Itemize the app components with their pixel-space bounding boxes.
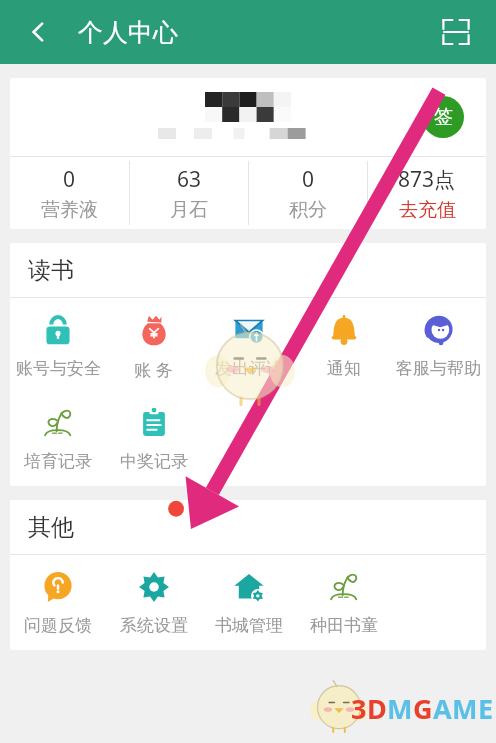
staticText: 0 [302,165,315,194]
staticText: 月石 [170,198,208,222]
staticText: 3 [351,690,367,727]
button[interactable]: 书城管理 [201,565,296,646]
staticText: M [452,690,478,727]
button[interactable]: 63 [130,157,248,229]
button[interactable]: 签 [422,96,464,138]
staticText: 账 务 [134,358,173,381]
staticText: 0 [63,165,76,194]
staticText: A [433,690,452,727]
staticText: 通知 [327,358,361,379]
button[interactable]: 0 [10,157,129,229]
button[interactable]: Scan [434,10,478,54]
button[interactable]: 873点 [368,157,486,229]
staticText: 问题反馈 [24,615,92,636]
staticText: 种田书童 [310,615,378,636]
staticText: G [413,690,433,727]
staticText: 培育记录 [24,451,92,472]
staticText: 积分 [289,198,327,222]
staticText: 签 [434,105,453,129]
staticText: 个人中心 [78,17,178,48]
button[interactable]: 中奖记录 [106,401,201,482]
button[interactable]: 客服与帮助 [391,308,486,389]
staticText: 去充值 [399,198,456,222]
staticText: 873点 [398,165,456,194]
button[interactable]: 通知 [296,308,391,389]
staticText: D [367,690,387,727]
staticText: 读书 [28,256,74,285]
button[interactable]: 种田书童 [296,565,391,646]
staticText: M [387,690,413,727]
button[interactable]: 问题反馈 [10,565,106,646]
staticText: 63 [177,165,202,194]
staticText: 中奖记录 [120,451,188,472]
staticText: 发出评论 [215,358,283,379]
staticText: 书城管理 [215,615,283,636]
staticText: 账号与安全 [16,358,101,379]
button[interactable]: 账号与安全 [10,308,106,389]
staticText: 其他 [28,513,74,542]
button[interactable]: Back [16,10,60,54]
button[interactable]: 系统设置 [106,565,201,646]
button[interactable]: 账 务 [106,308,201,391]
staticText: 营养液 [41,198,98,222]
button[interactable]: 发出评论 [201,308,296,389]
button[interactable]: 培育记录 [10,401,106,482]
button[interactable]: 0 [249,157,367,229]
staticText: 系统设置 [120,615,188,636]
staticText: E [478,690,494,727]
staticText: 客服与帮助 [396,358,481,379]
